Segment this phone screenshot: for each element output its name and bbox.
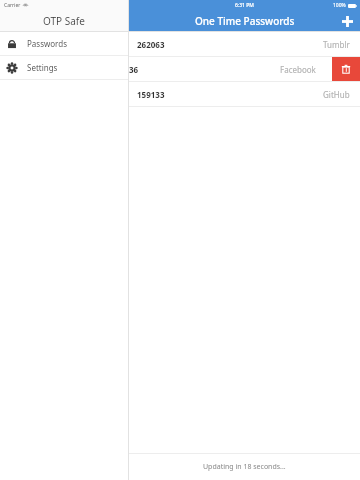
staticText: Settings	[27, 62, 58, 73]
button[interactable]: 36	[121, 57, 352, 81]
staticText: Carrier	[4, 2, 21, 9]
staticText: 36	[129, 64, 139, 75]
staticText: Passwords	[27, 38, 68, 49]
button[interactable]: 159133	[129, 82, 360, 106]
staticText: Tumblr	[323, 39, 350, 50]
staticText: 100%	[333, 2, 346, 9]
staticText: 6:31 PM	[235, 2, 254, 9]
button[interactable]: Delete	[332, 57, 360, 81]
staticText: 262063	[137, 39, 165, 50]
button[interactable]: Settings	[0, 56, 128, 79]
staticText: GitHub	[323, 89, 350, 100]
button[interactable]: 262063	[129, 32, 360, 56]
staticText: 159133	[137, 89, 165, 100]
staticText: One Time Passwords	[195, 14, 295, 28]
button[interactable]: Add password	[334, 11, 360, 31]
staticText: Updating in 18 seconds...	[203, 462, 286, 472]
staticText: OTP Safe	[43, 14, 85, 28]
staticText: Facebook	[280, 64, 316, 75]
button[interactable]: Passwords	[0, 32, 128, 55]
